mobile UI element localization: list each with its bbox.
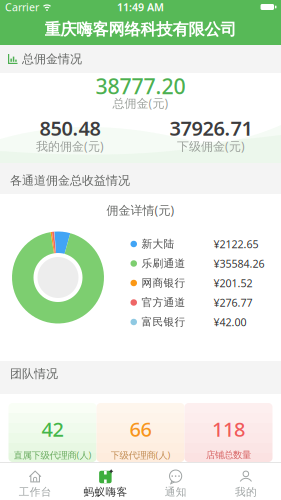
button[interactable]: 66 — [96, 403, 184, 462]
staticText: 工作台 — [19, 485, 52, 499]
staticText: 118 — [212, 416, 245, 442]
staticText: 官方通道 — [141, 296, 185, 309]
staticText: 42 — [41, 416, 63, 442]
staticText: 我的 — [235, 485, 257, 499]
button[interactable]: 42 — [8, 403, 96, 462]
button[interactable]: 工作台 — [0, 462, 70, 500]
staticText: 网商银行 — [141, 276, 185, 289]
staticText: 新大陆 — [141, 237, 174, 250]
staticText: 重庆嗨客网络科技有限公司 — [44, 20, 236, 39]
staticText: 佣金详情(元) — [106, 202, 174, 218]
staticText: 直属下级代理商(人) — [13, 449, 91, 461]
button[interactable]: 我的 — [211, 462, 281, 500]
button[interactable]: 118 — [184, 403, 272, 462]
staticText: ¥201.52 — [213, 276, 252, 290]
staticText: ¥2122.65 — [213, 237, 258, 251]
staticText: 下级佣金(元) — [177, 138, 245, 154]
button[interactable]: 蚂蚁嗨客 — [70, 462, 140, 500]
staticText: 66 — [129, 416, 151, 442]
staticText: 下级代理商(人) — [110, 449, 170, 461]
staticText: ¥42.00 — [213, 315, 246, 329]
staticText: 11:49 AM — [117, 0, 164, 14]
staticText: 店铺总数量 — [206, 449, 251, 461]
staticText: ¥35584.26 — [213, 256, 264, 271]
staticText: 我的佣金(元) — [36, 138, 104, 154]
staticText: 蚂蚁嗨客 — [83, 485, 127, 499]
staticText: 乐刷通道 — [141, 257, 185, 270]
staticText: 总佣金(元) — [112, 95, 168, 111]
staticText: 37926.71 — [169, 115, 252, 141]
staticText: 总佣金情况 — [22, 52, 82, 66]
staticText: 通知 — [165, 485, 187, 499]
staticText: 各通道佣金总收益情况 — [10, 173, 130, 188]
staticText: 团队情况 — [10, 366, 58, 381]
staticText: ¥276.77 — [213, 295, 252, 310]
staticText: 富民银行 — [141, 315, 185, 328]
staticText: 38777.20 — [95, 72, 185, 100]
staticText: Carrier — [5, 0, 39, 14]
staticText: 850.48 — [39, 115, 100, 141]
button[interactable]: 通知 — [140, 462, 211, 500]
